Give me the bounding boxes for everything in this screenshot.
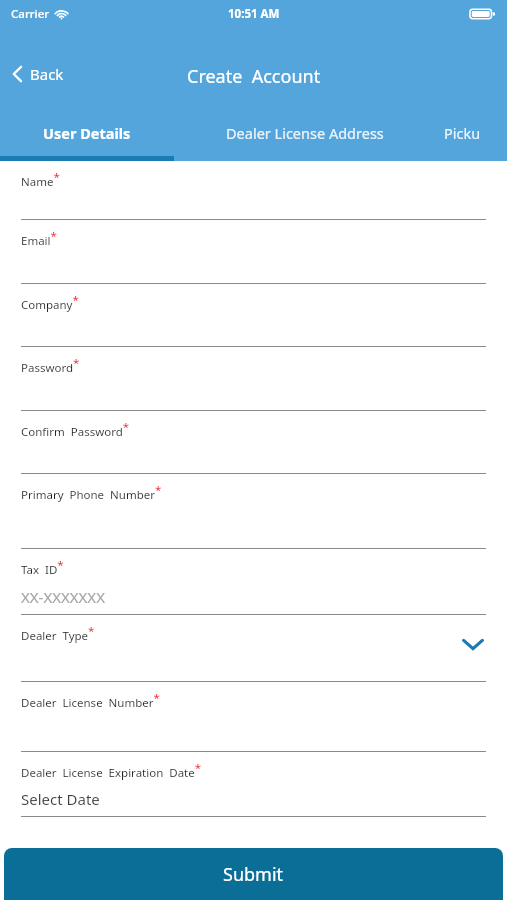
staticText: 10:51 AM <box>228 6 280 22</box>
button[interactable]: Confirm Password* <box>0 411 507 474</box>
staticText: Tax ID* <box>21 557 64 577</box>
staticText: Back <box>30 64 64 84</box>
staticText: Create Account <box>187 64 321 89</box>
staticText: Dealer License Expiration Date* <box>21 760 202 780</box>
staticText: Confirm Password* <box>21 419 130 439</box>
button[interactable]: User Details <box>0 118 174 161</box>
staticText: Picku <box>444 123 481 143</box>
button[interactable]: Dealer License Expiration Date* <box>0 752 507 817</box>
button[interactable]: Name* <box>0 161 507 220</box>
staticText: Password* <box>21 355 80 375</box>
staticText: Dealer License Number* <box>21 690 160 710</box>
button[interactable]: Back <box>9 62 67 86</box>
button[interactable]: Password* <box>0 347 507 411</box>
button[interactable]: Company* <box>0 284 507 347</box>
staticText: Select Date <box>21 789 100 809</box>
button[interactable]: Dealer License Address <box>174 118 436 161</box>
staticText: User Details <box>43 123 131 143</box>
staticText: Submit <box>223 862 284 887</box>
button[interactable]: Dealer License Number* <box>0 682 507 752</box>
staticText: Primary Phone Number* <box>21 482 162 502</box>
button[interactable]: Dealer Type* <box>0 615 507 682</box>
staticText: Dealer License Address <box>226 123 384 143</box>
button[interactable]: Tax ID* <box>0 549 507 615</box>
staticText: XX-XXXXXXX <box>21 587 105 607</box>
button[interactable]: Open dropdown <box>460 631 486 657</box>
button[interactable]: Primary Phone Number* <box>0 474 507 549</box>
staticText: Company* <box>21 292 79 312</box>
staticText: Email* <box>21 228 57 248</box>
staticText: Name* <box>21 169 60 189</box>
button[interactable]: Submit <box>4 848 503 900</box>
button[interactable]: Email* <box>0 220 507 284</box>
staticText: Carrier <box>11 6 50 22</box>
staticText: Dealer Type* <box>21 623 95 643</box>
button[interactable]: Picku <box>436 118 473 161</box>
